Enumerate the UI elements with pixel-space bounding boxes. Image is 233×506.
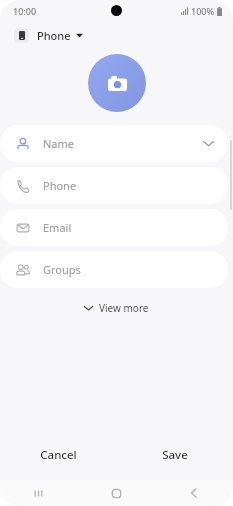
button[interactable]: Save (116, 440, 233, 470)
staticText: Save (162, 447, 188, 463)
staticText: View more (99, 301, 149, 315)
staticText: Name (43, 136, 75, 151)
staticText: Email (43, 220, 72, 235)
staticText: 100% (191, 5, 215, 17)
button[interactable]: Home (77, 480, 155, 506)
staticText: Phone (43, 178, 77, 193)
staticText: 10:00 (13, 5, 37, 17)
button[interactable]: View more (74, 296, 159, 320)
staticText: Groups (43, 262, 81, 277)
button[interactable]: Back (155, 480, 233, 506)
button[interactable]: Groups (0, 251, 228, 288)
staticText: Cancel (40, 447, 77, 463)
button[interactable]: Name (0, 125, 228, 162)
staticText: Phone (37, 28, 71, 43)
button[interactable]: Phone (0, 167, 228, 204)
button[interactable]: Recents (0, 480, 77, 506)
button[interactable]: Email (0, 209, 228, 246)
button[interactable]: Add photo (88, 54, 146, 112)
button[interactable]: Cancel (0, 440, 116, 470)
button[interactable]: Phone (37, 28, 83, 43)
